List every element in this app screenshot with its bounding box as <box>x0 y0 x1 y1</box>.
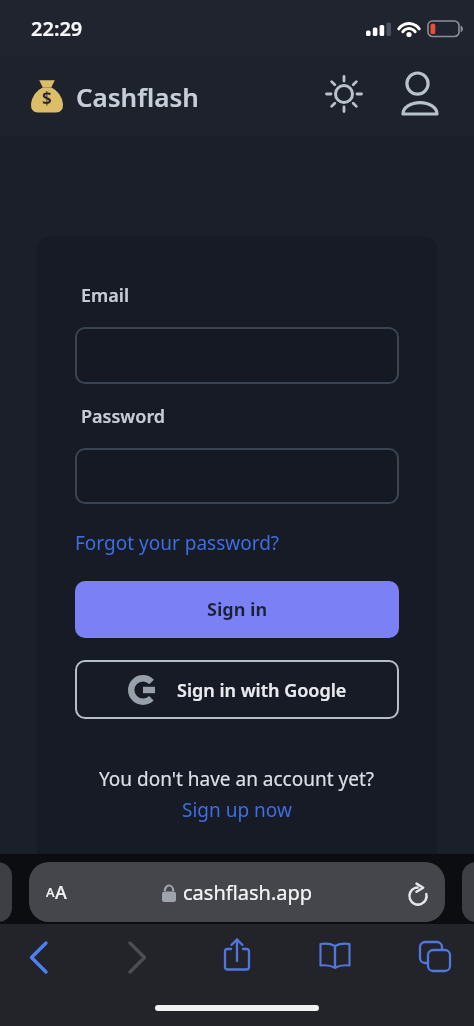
button[interactable] <box>118 936 158 980</box>
staticText: Sign in <box>207 597 268 622</box>
staticText: cashflash.app <box>183 879 313 906</box>
button[interactable]: Sign up now <box>182 797 292 823</box>
staticText: Sign in with Google <box>177 678 347 703</box>
button[interactable]: Forgot your password? <box>0 0 205 26</box>
button[interactable] <box>75 448 399 504</box>
button[interactable]: Sign in with Google <box>75 660 399 719</box>
button[interactable] <box>315 937 355 977</box>
staticText: Email <box>81 283 130 308</box>
staticText: $ <box>42 87 52 110</box>
button[interactable] <box>18 936 58 980</box>
staticText: A <box>55 880 67 905</box>
button[interactable] <box>75 327 399 384</box>
button[interactable] <box>324 74 364 114</box>
button[interactable]: Cashflash <box>0 0 123 35</box>
button[interactable]: Sign in <box>75 581 399 638</box>
button[interactable] <box>217 936 257 980</box>
staticText: A <box>46 883 55 901</box>
staticText: You don't have an account yet? <box>99 766 375 792</box>
button[interactable] <box>396 68 440 118</box>
button[interactable] <box>417 938 457 978</box>
staticText: Password <box>81 404 166 429</box>
button[interactable] <box>405 883 431 909</box>
button[interactable]: A <box>29 862 445 922</box>
staticText: 22:29 <box>31 15 83 42</box>
